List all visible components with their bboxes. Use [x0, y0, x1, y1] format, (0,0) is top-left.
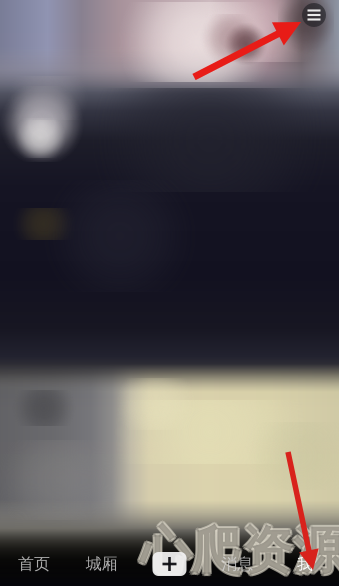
staticText: 心爬资源 — [142, 521, 339, 584]
staticText: 首页 — [18, 554, 50, 574]
button[interactable]: 城厢 — [68, 545, 136, 583]
staticText: 消息 — [221, 554, 253, 574]
staticText: 城厢 — [86, 554, 118, 574]
staticText: 心爬资源 — [142, 520, 339, 582]
staticText: 心爬资源 — [138, 521, 339, 584]
button[interactable]: 我 — [271, 545, 339, 583]
button[interactable]: 首页 — [0, 545, 68, 583]
button[interactable]: Menu — [0, 0, 339, 586]
staticText: 心爬资源 — [142, 518, 339, 580]
staticText: 我 — [297, 554, 313, 574]
button[interactable]: Create — [136, 545, 203, 583]
staticText: 心爬资源 — [140, 518, 339, 580]
staticText: 心爬资源 — [138, 520, 339, 582]
staticText: 心爬资源 — [140, 522, 339, 584]
button[interactable]: 消息 — [203, 545, 271, 583]
staticText: 心爬资源 — [140, 520, 339, 582]
staticText: 心爬资源 — [138, 518, 339, 580]
